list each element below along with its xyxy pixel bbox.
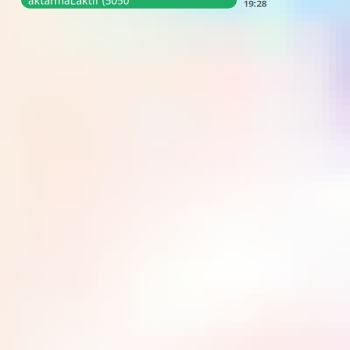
staticText: aktarmaLaktif (5050 xyxy=(28,0,129,7)
staticText: 19:28 xyxy=(243,0,266,9)
button[interactable]: aktarmaLaktif (5050 xyxy=(21,0,237,8)
